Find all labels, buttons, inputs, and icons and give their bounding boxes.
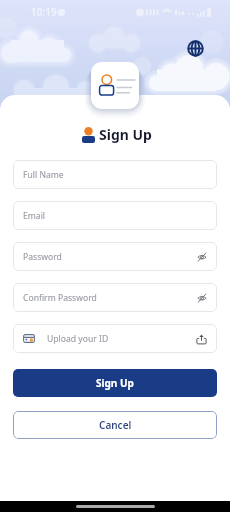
button[interactable]: Toggle password visibility bbox=[195, 250, 208, 263]
staticText: Full Name bbox=[23, 169, 64, 181]
staticText: Password bbox=[23, 251, 62, 263]
button[interactable]: Full Name bbox=[13, 160, 217, 189]
staticText: 10:19 bbox=[31, 5, 57, 19]
button[interactable]: Upload file bbox=[194, 332, 208, 346]
staticText: Email bbox=[23, 210, 46, 222]
button[interactable]: Password bbox=[13, 242, 217, 271]
button[interactable]: Sign Up bbox=[13, 369, 217, 397]
button[interactable]: Cancel bbox=[13, 411, 217, 439]
button[interactable]: Confirm Password bbox=[13, 283, 217, 312]
staticText: Sign Up bbox=[96, 376, 134, 390]
staticText: Cancel bbox=[99, 418, 132, 432]
staticText: Upload your ID bbox=[47, 333, 109, 345]
button[interactable]: Email bbox=[13, 201, 217, 230]
staticText: Confirm Password bbox=[23, 292, 97, 304]
button[interactable]: Toggle password visibility bbox=[195, 291, 208, 304]
staticText: Sign Up bbox=[99, 125, 152, 144]
button[interactable]: Language bbox=[183, 36, 208, 61]
button[interactable]: Upload your ID bbox=[13, 324, 217, 353]
